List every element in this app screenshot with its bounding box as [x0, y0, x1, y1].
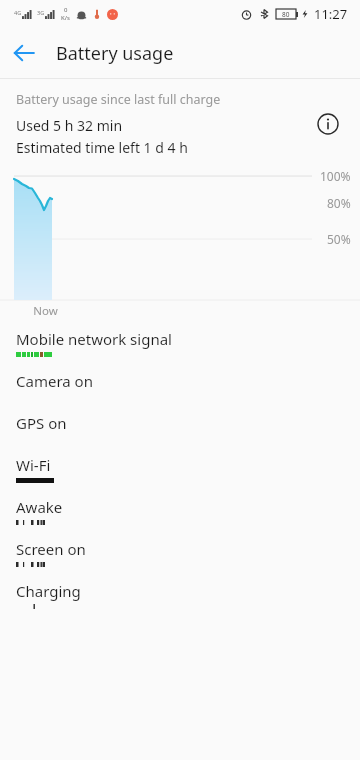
staticText: 80	[282, 10, 290, 19]
staticText: K/s	[61, 14, 70, 22]
staticText: Now	[33, 303, 58, 319]
staticText: Screen on	[16, 539, 86, 559]
button[interactable]: Mobile network signal	[0, 322, 360, 364]
button[interactable]: Wi-Fi	[0, 448, 360, 490]
button[interactable]: Information	[308, 104, 348, 144]
staticText: Used 5 h 32 min	[16, 116, 123, 135]
staticText: GPS on	[16, 413, 67, 433]
staticText: Estimated time left 1 d 4 h	[16, 138, 188, 157]
staticText: 3G	[37, 9, 45, 16]
staticText: 100%	[320, 168, 351, 184]
button[interactable]: Screen on	[0, 532, 360, 574]
button[interactable]: Awake	[0, 490, 360, 532]
staticText: Wi-Fi	[16, 455, 51, 475]
button[interactable]: Camera on	[0, 364, 360, 406]
staticText: Charging	[16, 581, 81, 601]
staticText: Mobile network signal	[16, 329, 172, 349]
staticText: Awake	[16, 497, 63, 517]
button[interactable]: Back	[0, 29, 48, 77]
staticText: 50%	[327, 231, 351, 247]
staticText: 0	[64, 6, 68, 14]
staticText: 4G	[14, 9, 22, 16]
staticText: Battery usage since last full charge	[16, 91, 221, 108]
staticText: 11:27	[314, 5, 348, 23]
button[interactable]: GPS on	[0, 406, 360, 448]
staticText: Camera on	[16, 371, 93, 391]
button[interactable]: Charging	[0, 574, 360, 616]
staticText: 80%	[327, 195, 351, 211]
staticText: Battery usage	[56, 41, 174, 66]
